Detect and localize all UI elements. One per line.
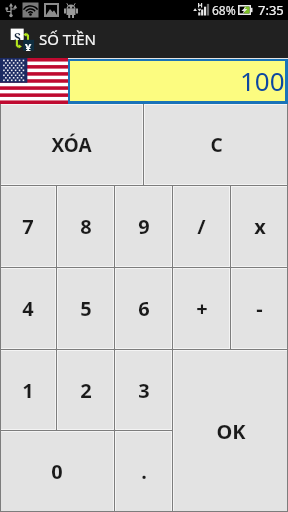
button[interactable]: 0 xyxy=(0,431,114,512)
button[interactable]: Currency converter xyxy=(8,27,32,51)
staticText: 68% xyxy=(212,2,236,18)
staticText: ¥ xyxy=(25,40,32,51)
staticText: OK xyxy=(216,418,246,445)
staticText: S xyxy=(14,29,21,40)
staticText: 6 xyxy=(138,295,150,322)
staticText: 2 xyxy=(80,377,92,404)
staticText: 4 xyxy=(22,295,34,322)
staticText: + xyxy=(196,295,208,322)
staticText: C xyxy=(210,132,223,158)
staticText: 5 xyxy=(80,295,92,322)
button[interactable]: 4 xyxy=(0,268,56,349)
button[interactable]: x xyxy=(231,186,288,267)
staticText: 100 xyxy=(240,63,285,98)
staticText: 0 xyxy=(51,458,63,485)
button[interactable]: 1 xyxy=(0,350,56,430)
button[interactable]: 5 xyxy=(57,268,114,349)
button[interactable]: 2 xyxy=(57,350,114,430)
staticText: SỐ TIỀN xyxy=(39,29,97,49)
button[interactable]: + xyxy=(173,268,230,349)
button[interactable]: / xyxy=(173,186,230,267)
staticText: 7 xyxy=(22,213,34,240)
button[interactable]: - xyxy=(231,268,288,349)
button[interactable]: 7 xyxy=(0,186,56,267)
button[interactable]: XÓA xyxy=(0,104,143,185)
staticText: / xyxy=(197,213,206,240)
button[interactable]: 9 xyxy=(115,186,172,267)
button[interactable]: 8 xyxy=(57,186,114,267)
staticText: 1 xyxy=(22,377,34,404)
staticText: 9 xyxy=(138,213,150,240)
button[interactable]: . xyxy=(115,431,172,512)
staticText: 7:35 xyxy=(258,1,284,19)
staticText: 8 xyxy=(80,213,92,240)
staticText: . xyxy=(141,458,147,485)
staticText: x xyxy=(254,213,266,240)
button[interactable]: 100 xyxy=(70,61,285,101)
button[interactable]: C xyxy=(144,104,288,185)
staticText: 3 xyxy=(138,377,150,404)
button[interactable]: OK xyxy=(173,350,288,512)
staticText: - xyxy=(256,295,263,322)
button[interactable]: 6 xyxy=(115,268,172,349)
button[interactable]: 3 xyxy=(115,350,172,430)
staticText: XÓA xyxy=(51,132,92,158)
